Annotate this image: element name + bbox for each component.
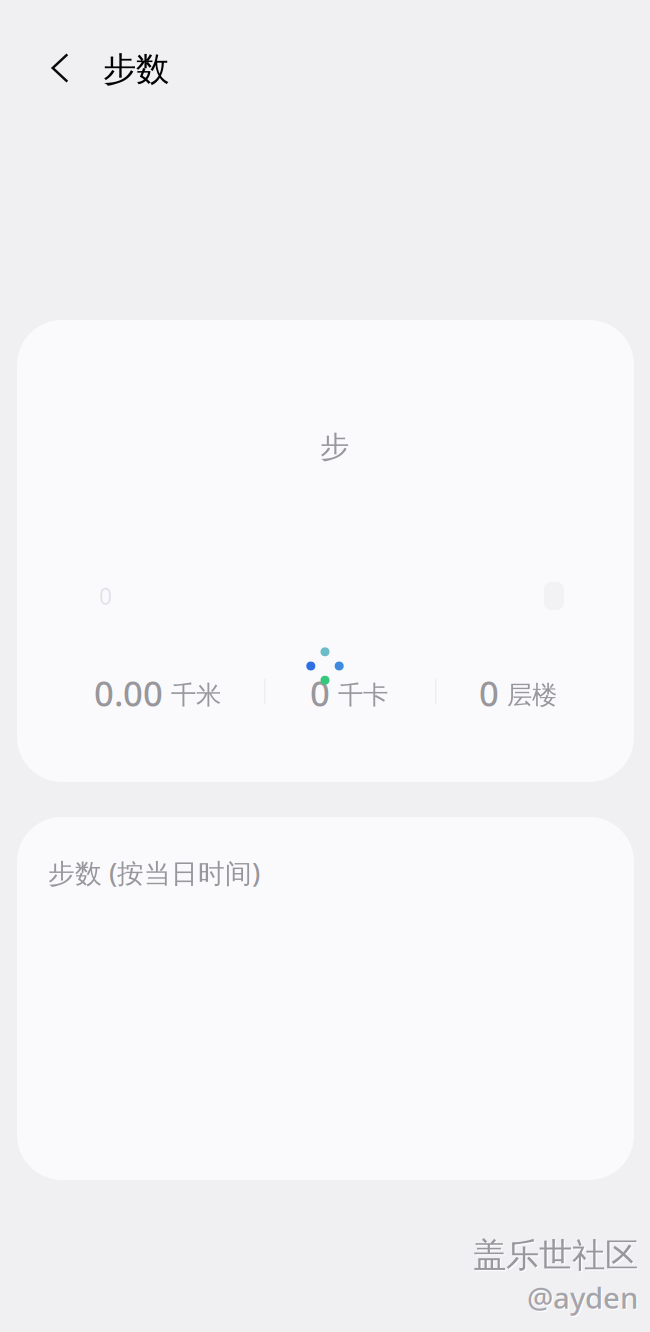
staticText: @ayden [527, 1278, 638, 1317]
staticText: 千米 [171, 679, 221, 711]
staticText: 盖乐世社区 [473, 1235, 638, 1276]
staticText: 步数 [103, 49, 169, 90]
staticText: 步 [320, 429, 349, 465]
staticText: @ayden [528, 1279, 639, 1318]
staticText: 0 [479, 670, 499, 716]
staticText: 千卡 [338, 679, 388, 711]
staticText: 0.00 [94, 670, 163, 716]
button[interactable]: Back [35, 41, 85, 95]
staticText: 0 [310, 670, 330, 716]
staticText: 层楼 [507, 679, 557, 711]
staticText: 盖乐世社区 [474, 1236, 639, 1277]
button[interactable]: 步数 (按当日时间) [17, 817, 634, 1180]
staticText: 0 [99, 581, 112, 611]
button[interactable]: 步 [17, 320, 634, 782]
staticText: 步数 (按当日时间) [48, 855, 260, 890]
